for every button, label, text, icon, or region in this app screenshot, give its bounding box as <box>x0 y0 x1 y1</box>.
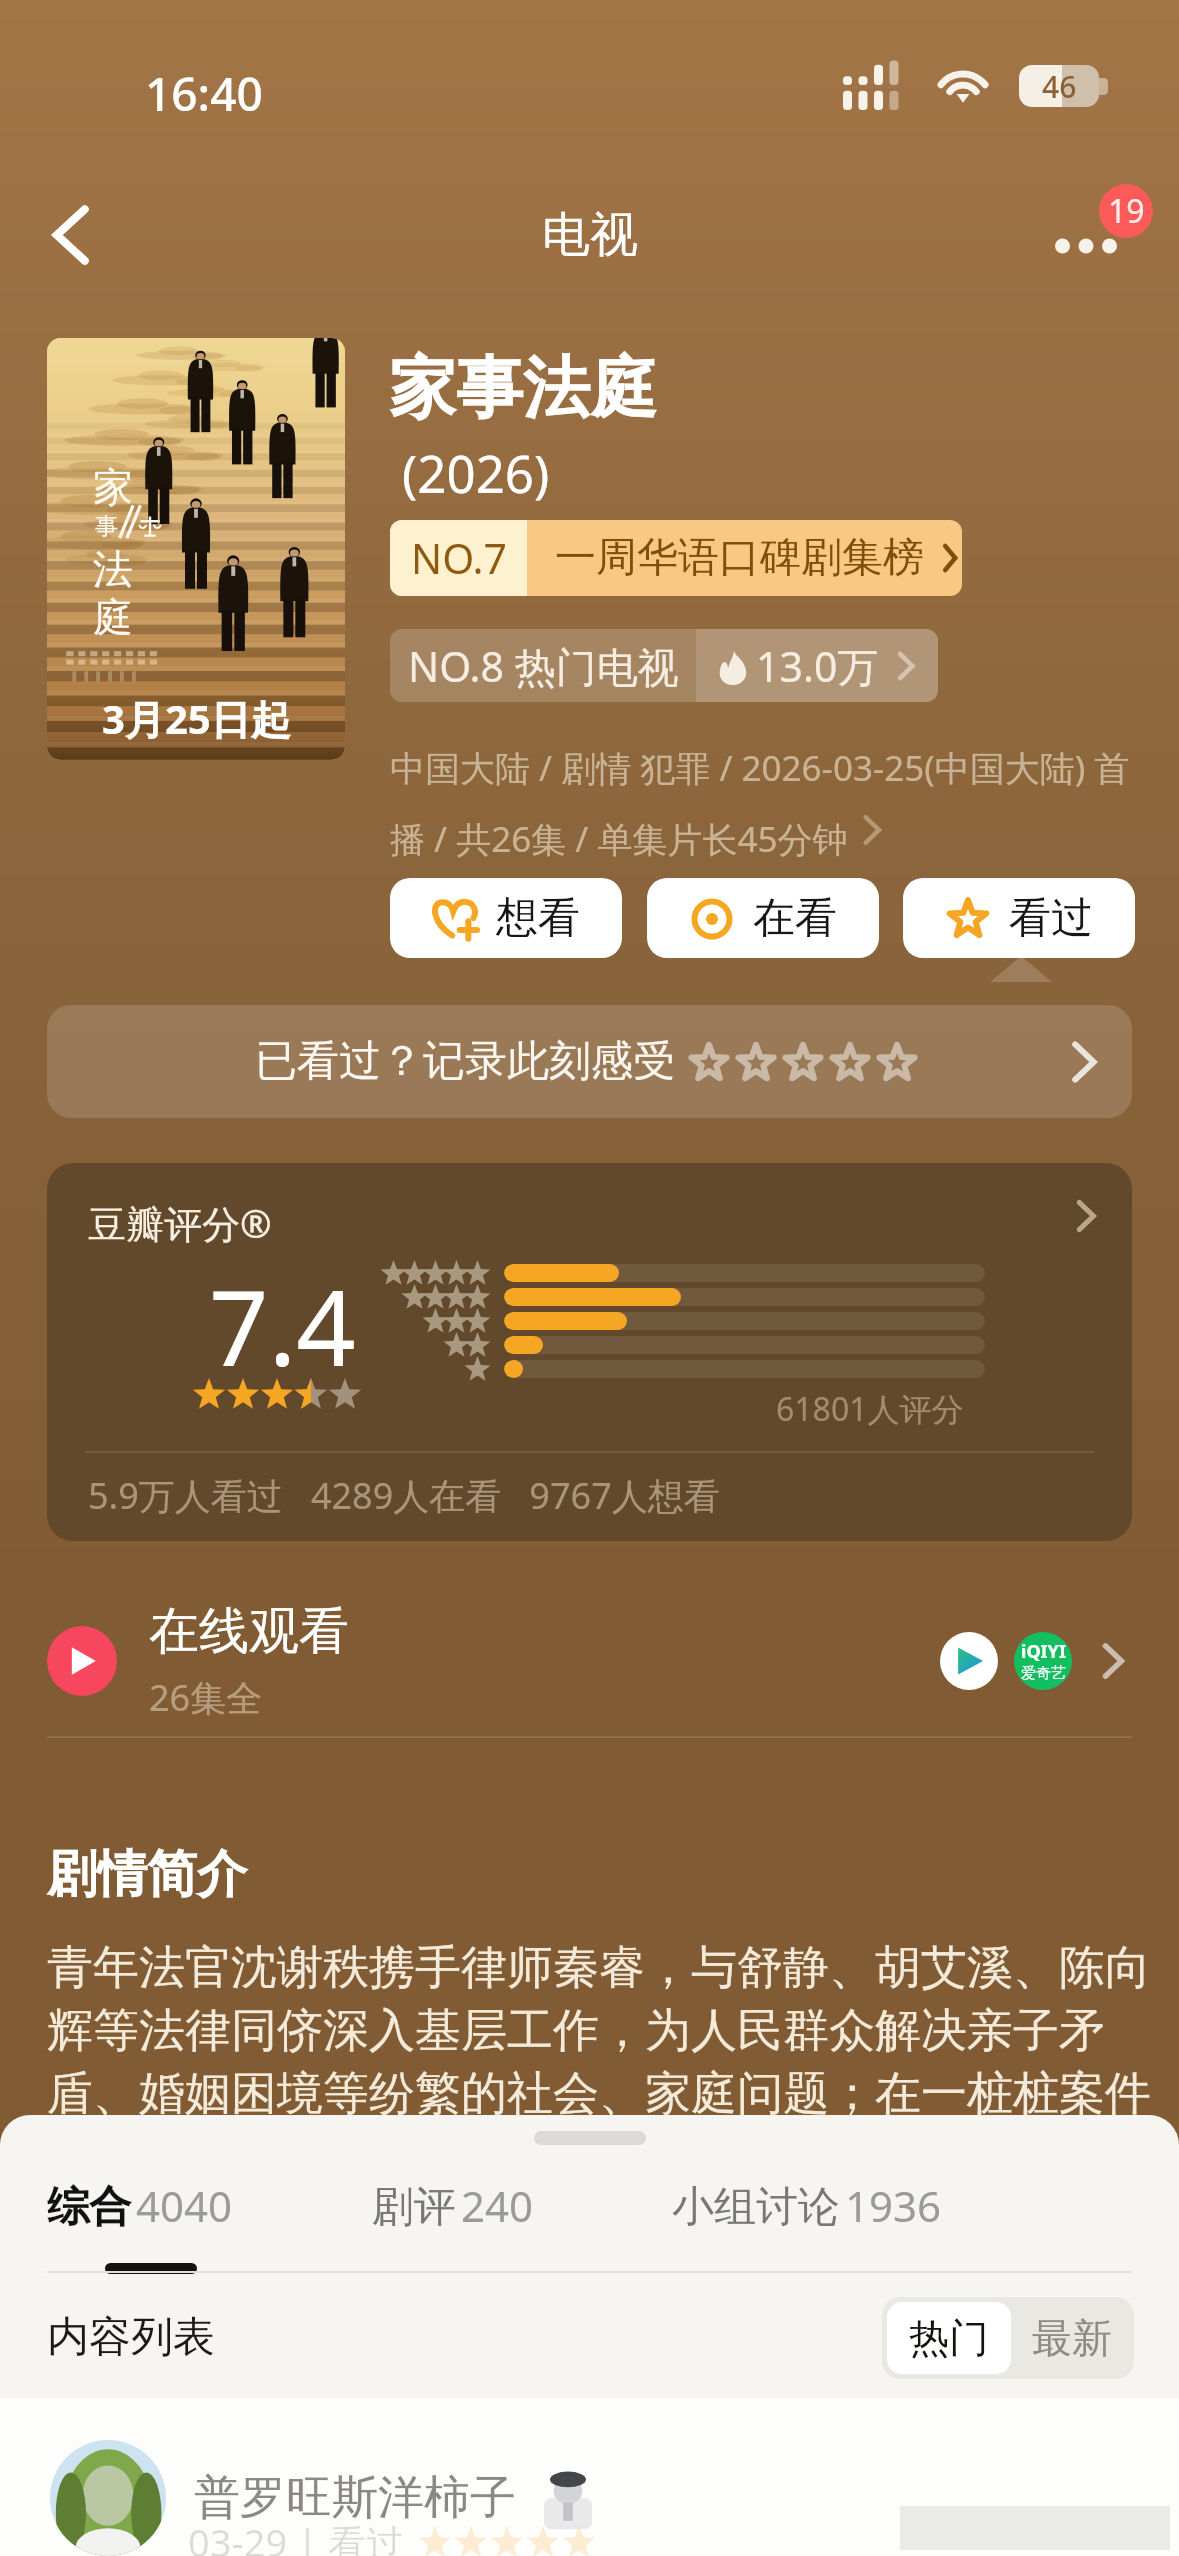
button[interactable]: 想看 <box>390 878 622 958</box>
staticText: 爱奇艺 <box>1021 1664 1066 1683</box>
staticText: 一周华语口碑剧集榜 <box>555 532 924 584</box>
staticText: 豆瓣评分® <box>88 1197 272 1249</box>
staticText: 庭 <box>93 592 133 642</box>
staticText: 看过 <box>1009 892 1093 945</box>
staticText: NO.8 热门电视 <box>408 638 679 694</box>
button[interactable]: 在线观看 <box>47 1586 1132 1736</box>
button[interactable]: 剧评 <box>372 2177 534 2234</box>
button[interactable]: 普罗旺斯洋柿子 <box>0 2440 1179 2556</box>
staticText: (2026) <box>402 438 550 507</box>
staticText: 5.9万人看过 4289人在看 9767人想看 <box>88 1471 720 1520</box>
staticText: 13.0万 <box>756 638 879 694</box>
staticText: 61801人评分 <box>776 1387 964 1431</box>
staticText: 剧情简介 <box>47 1843 247 1906</box>
staticText: 热门 <box>909 2313 989 2363</box>
staticText: 7.4 <box>209 1255 356 1397</box>
staticText: NO.7 <box>411 530 507 586</box>
staticText: 4040 <box>136 2177 233 2234</box>
staticText: 事 <box>95 512 118 541</box>
staticText: 剧评 <box>372 2181 456 2234</box>
staticText: 中国大陆 / 剧情 犯罪 / 2026-03-25(中国大陆) 首播 / 共26… <box>390 744 1138 863</box>
staticText: 46 <box>1042 66 1077 107</box>
staticText: 想看 <box>496 892 580 945</box>
button[interactable]: Play on Tencent Video <box>940 1632 998 1690</box>
button[interactable]: 热门 <box>887 2302 1011 2374</box>
staticText: 1936 <box>845 2177 942 2234</box>
button[interactable]: 小组讨论 <box>672 2177 942 2234</box>
button[interactable]: 已看过？记录此刻感受 <box>47 1005 1132 1118</box>
button[interactable]: NO.8 热门电视 <box>390 629 938 702</box>
staticText: 法 <box>93 544 133 594</box>
staticText: 小组讨论 <box>672 2181 840 2234</box>
staticText: iQIYI <box>1021 1639 1066 1664</box>
button[interactable]: Play on iQIYI <box>1014 1632 1072 1690</box>
button[interactable]: 综合 <box>47 2177 233 2234</box>
staticText: 家 <box>93 462 133 512</box>
button[interactable]: NO.7 <box>390 520 962 596</box>
button[interactable]: Poster of 家事法庭 <box>47 338 345 760</box>
button[interactable]: 最新 <box>1010 2297 1134 2379</box>
staticText: 03-29 | 看过 <box>188 2516 404 2556</box>
staticText: 26集全 <box>149 1673 263 1722</box>
staticText: 在线观看 <box>149 1600 349 1663</box>
staticText: 青年法官沈谢秩携手律师秦睿，与舒静、胡艾溪、陈向辉等法律同侪深入基层工作，为人民… <box>47 1939 1171 2186</box>
staticText: 240 <box>461 2177 534 2234</box>
staticText: 19 <box>1108 189 1145 233</box>
staticText: 最新 <box>1032 2313 1112 2363</box>
staticText: 已看过？记录此刻感受 <box>255 1035 675 1088</box>
button[interactable]: 豆瓣评分® <box>47 1163 1132 1541</box>
staticText: 电视 <box>542 205 638 265</box>
staticText: 3月25日起 <box>102 691 291 746</box>
staticText: 普罗旺斯洋柿子 <box>194 2469 516 2527</box>
button[interactable]: 看过 <box>903 878 1135 958</box>
button[interactable]: 在看 <box>647 878 879 958</box>
staticText: 在看 <box>753 892 837 945</box>
staticText: 内容列表 <box>47 2311 215 2364</box>
staticText: 家事法庭 <box>389 346 657 430</box>
staticText: 综合 <box>47 2181 131 2234</box>
staticText: 16:40 <box>145 62 263 125</box>
button[interactable]: Back <box>22 185 122 285</box>
button[interactable]: More options <box>1047 180 1157 290</box>
